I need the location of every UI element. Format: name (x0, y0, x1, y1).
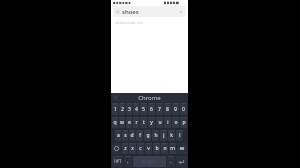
staticText: l (179, 132, 181, 139)
staticText: j (163, 132, 165, 139)
button[interactable]: t (140, 117, 147, 128)
button[interactable]: l (176, 130, 183, 141)
staticText: v (147, 145, 150, 152)
staticText: Chrome (138, 94, 161, 102)
staticText: c (139, 145, 142, 152)
button[interactable]: h (152, 130, 159, 141)
button[interactable]: , (124, 156, 132, 167)
staticText: shoes (122, 8, 139, 16)
staticText: e (128, 119, 131, 126)
staticText: m (170, 145, 175, 152)
staticText: b (155, 145, 159, 152)
staticText: !#1 (114, 158, 122, 165)
staticText: a (117, 132, 120, 139)
button[interactable]: m (169, 143, 176, 154)
staticText: 4 (135, 106, 138, 113)
staticText: 3 (128, 106, 131, 113)
button[interactable]: a (115, 130, 121, 141)
other: Search (116, 10, 120, 14)
button[interactable]: g (144, 130, 151, 141)
button[interactable]: y (148, 117, 155, 128)
staticText: 9 (174, 106, 177, 113)
button[interactable]: 5 (140, 103, 147, 115)
button[interactable]: q (112, 117, 118, 128)
staticText: d (130, 132, 134, 139)
staticText: 1 (114, 106, 117, 113)
staticText: English (143, 159, 157, 164)
staticText: q (113, 119, 117, 126)
button[interactable]: j (160, 130, 167, 141)
button[interactable]: w (119, 117, 125, 128)
staticText: h (154, 132, 158, 139)
button[interactable]: 1 (112, 103, 118, 115)
staticText: 8 (166, 106, 169, 113)
staticText: p (182, 119, 186, 126)
button[interactable]: s (122, 130, 128, 141)
staticText: k (170, 132, 173, 139)
staticText: 2 (121, 106, 124, 113)
other: Clear (179, 10, 183, 14)
staticText: 6 (150, 106, 153, 113)
button[interactable]: 4 (133, 103, 139, 115)
button[interactable]: e (126, 117, 132, 128)
button[interactable]: !#1 (112, 156, 123, 167)
button[interactable]: n (161, 143, 168, 154)
button[interactable]: 2 (119, 103, 125, 115)
staticText: o (174, 119, 178, 126)
button[interactable]: b (153, 143, 160, 154)
button[interactable]: 3 (126, 103, 132, 115)
button[interactable]: Shift (112, 143, 121, 154)
staticText: n (163, 145, 167, 152)
button[interactable]: 9 (172, 103, 179, 115)
button[interactable]: Backspace (177, 143, 187, 154)
button[interactable]: v (145, 143, 152, 154)
staticText: 5 (142, 106, 145, 113)
button[interactable]: Search (113, 6, 186, 17)
button[interactable]: 7 (156, 103, 163, 115)
button[interactable]: x (129, 143, 136, 154)
staticText: y (150, 119, 153, 126)
button[interactable]: o (172, 117, 179, 128)
button[interactable]: . (167, 156, 175, 167)
staticText: w (120, 119, 124, 126)
button[interactable]: 8 (164, 103, 171, 115)
staticText: t (143, 119, 145, 126)
button[interactable]: i (164, 117, 171, 128)
button[interactable]: c (137, 143, 144, 154)
button[interactable]: d (129, 130, 135, 141)
staticText: , (127, 158, 129, 165)
button[interactable]: u (156, 117, 163, 128)
button[interactable]: z (122, 143, 128, 154)
button[interactable]: shoes near me (111, 17, 188, 27)
button[interactable]: r (133, 117, 139, 128)
staticText: 0 (182, 106, 185, 113)
button[interactable]: Enter (176, 156, 187, 167)
button[interactable]: p (180, 117, 187, 128)
staticText: s (124, 132, 127, 139)
button[interactable]: f (136, 130, 143, 141)
button[interactable]: k (168, 130, 175, 141)
staticText: 7 (158, 106, 161, 113)
staticText: r (135, 119, 138, 126)
staticText: shoes near me (115, 20, 143, 25)
staticText: f (139, 132, 141, 139)
staticText: g (146, 132, 150, 139)
staticText: . (170, 158, 172, 165)
staticText: x (131, 145, 134, 152)
button[interactable]: 0 (180, 103, 187, 115)
staticText: z (124, 145, 127, 152)
staticText: u (158, 119, 162, 126)
staticText: i (167, 119, 169, 126)
button[interactable]: 6 (148, 103, 155, 115)
